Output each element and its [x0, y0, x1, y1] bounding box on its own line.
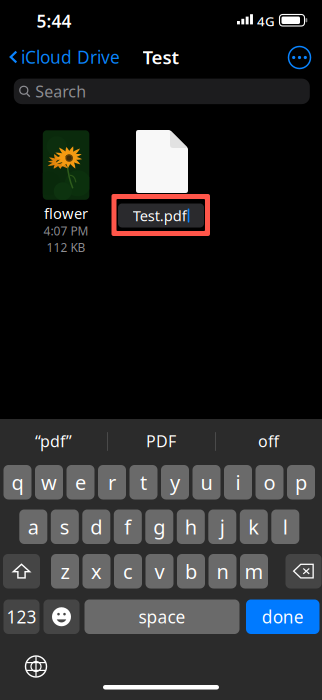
button[interactable]: Test.pdf [118, 203, 204, 227]
button[interactable]: x [82, 554, 110, 588]
staticText: off [258, 430, 279, 452]
staticText: v [154, 558, 164, 585]
button[interactable]: t [129, 465, 157, 499]
staticText: space [138, 605, 185, 628]
staticText: iCloud Drive [21, 45, 120, 68]
button[interactable]: v [145, 554, 173, 588]
staticText: e [75, 469, 86, 496]
staticText: Test [142, 45, 179, 69]
staticText: flower [44, 204, 88, 223]
button[interactable]: z [51, 554, 79, 588]
staticText: f [124, 513, 131, 540]
staticText: b [185, 558, 197, 585]
staticText: y [170, 469, 180, 496]
button[interactable]: h [177, 509, 205, 544]
button[interactable]: PDF [107, 420, 215, 462]
staticText: 112 KB [46, 239, 85, 255]
staticText: q [11, 469, 23, 496]
button[interactable]: iCloud Drive [0, 42, 115, 72]
button[interactable]: space [84, 599, 239, 634]
staticText: 123 [6, 605, 36, 628]
staticText: 4G [257, 12, 275, 30]
button[interactable]: Change keyboard [25, 656, 46, 677]
button[interactable]: m [240, 554, 268, 588]
staticText: n [216, 558, 228, 585]
button[interactable]: u [192, 465, 220, 499]
button[interactable]: p [287, 465, 315, 499]
staticText: j [220, 513, 225, 540]
staticText: d [90, 513, 102, 540]
button[interactable]: e [66, 465, 94, 499]
staticText: done [262, 605, 304, 628]
staticText: 4:07 PM [43, 223, 88, 239]
staticText: 5:44 [36, 9, 71, 32]
button[interactable]: f [114, 509, 142, 544]
button[interactable]: r [98, 465, 126, 499]
button[interactable]: flower [18, 130, 113, 255]
staticText: x [91, 558, 102, 585]
button[interactable]: w [35, 465, 63, 499]
button[interactable]: n [208, 554, 236, 588]
staticText: o [263, 469, 275, 496]
button[interactable]: c [114, 554, 142, 588]
button[interactable]: a [19, 509, 47, 544]
staticText: s [60, 513, 70, 540]
button[interactable]: s [51, 509, 79, 544]
button[interactable]: j [208, 509, 236, 544]
staticText: w [41, 469, 57, 496]
button[interactable]: y [161, 465, 189, 499]
staticText: t [140, 469, 147, 496]
button[interactable]: o [255, 465, 283, 499]
staticText: PDF [146, 430, 176, 452]
button[interactable]: Emoji [43, 599, 79, 634]
button[interactable]: k [240, 509, 268, 544]
button[interactable]: Search [14, 79, 310, 104]
button[interactable]: b [177, 554, 205, 588]
button[interactable]: 123 [3, 599, 39, 634]
staticText: g [153, 513, 165, 540]
staticText: c [123, 558, 133, 585]
button[interactable]: “pdf” [0, 420, 107, 462]
button[interactable]: l [271, 509, 299, 544]
staticText: a [28, 513, 39, 540]
staticText: h [185, 513, 197, 540]
staticText: p [295, 469, 307, 496]
button[interactable]: Shift [3, 554, 40, 588]
staticText: u [200, 469, 212, 496]
button[interactable]: More [288, 46, 311, 69]
staticText: Search [35, 81, 86, 102]
staticText: Test.pdf [133, 206, 187, 225]
staticText: i [235, 469, 240, 496]
button[interactable]: done [246, 599, 319, 634]
button[interactable]: off [215, 420, 322, 462]
staticText: l [283, 513, 288, 540]
button[interactable]: q [3, 465, 31, 499]
staticText: r [108, 469, 116, 496]
button[interactable]: Delete [285, 554, 321, 588]
button[interactable]: i [224, 465, 252, 499]
staticText: m [244, 558, 263, 585]
button[interactable]: g [145, 509, 173, 544]
staticText: z [60, 558, 69, 585]
button[interactable]: d [82, 509, 110, 544]
staticText: “pdf” [35, 430, 72, 452]
staticText: k [248, 513, 259, 540]
